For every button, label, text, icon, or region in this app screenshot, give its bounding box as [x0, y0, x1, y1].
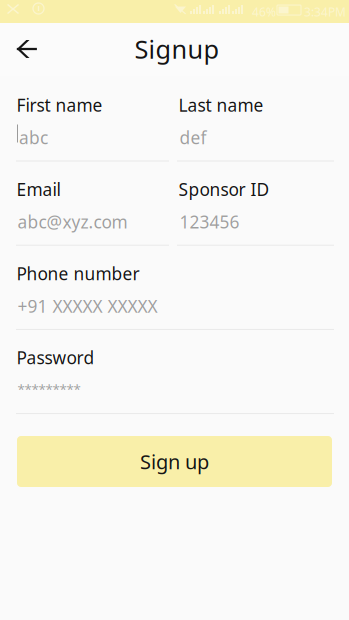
staticText: Email — [16, 178, 60, 201]
staticText: abc — [19, 126, 48, 149]
button[interactable]: Phone number — [0, 0, 349, 620]
staticText: 123456 — [179, 210, 239, 233]
staticText: Last name — [178, 93, 263, 116]
button[interactable]: Sign up — [17, 436, 332, 487]
staticText: Phone number — [16, 262, 139, 285]
staticText: +91 XXXXX XXXXX — [17, 294, 157, 317]
staticText: Sign up — [140, 448, 209, 475]
button[interactable]: First name — [0, 0, 349, 620]
staticText: Password — [16, 346, 94, 369]
button[interactable]: Email — [0, 0, 349, 620]
staticText: First name — [16, 93, 102, 116]
staticText: Signup — [134, 32, 219, 66]
button[interactable]: Password — [0, 0, 349, 620]
staticText: Sponsor ID — [178, 178, 269, 201]
staticText: abc@xyz.com — [17, 210, 127, 233]
staticText: def — [179, 126, 206, 149]
staticText: ********* — [17, 380, 80, 398]
staticText: 46% — [252, 4, 276, 20]
button[interactable]: Back — [5, 27, 49, 71]
button[interactable]: Last name — [0, 0, 349, 620]
button[interactable]: Sponsor ID — [0, 0, 349, 620]
staticText: 3:34PM — [304, 4, 346, 20]
